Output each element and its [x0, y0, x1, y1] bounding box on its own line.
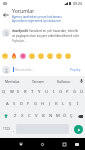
button[interactable]: Q — [0, 86, 8, 98]
button[interactable]: Switch keyboard — [71, 138, 83, 150]
button[interactable]: ?123 — [2, 124, 11, 134]
staticText: P — [66, 89, 69, 95]
button[interactable]: Reaction — [2, 53, 8, 59]
staticText: K — [55, 101, 58, 107]
button[interactable]: A — [4, 98, 11, 110]
button[interactable]: Back — [0, 7, 12, 23]
button[interactable]: Reaction — [11, 53, 17, 59]
button[interactable]: Merhaba — [0, 76, 25, 86]
staticText: V — [35, 113, 38, 119]
button[interactable]: Ç — [68, 110, 75, 122]
button[interactable]: F — [25, 98, 32, 110]
button[interactable]: H — [39, 98, 46, 110]
button[interactable]: Backspace — [75, 110, 85, 122]
button[interactable]: P — [64, 86, 71, 98]
button[interactable]: Ö — [61, 110, 68, 122]
button[interactable]: Tamam — [25, 76, 51, 86]
staticText: N — [49, 113, 53, 119]
button[interactable]: K — [53, 98, 60, 110]
staticText: I — [53, 89, 55, 95]
button[interactable]: Reaction — [29, 53, 35, 59]
staticText: Kullanıcı — [57, 79, 71, 84]
button[interactable]: X — [19, 110, 26, 122]
staticText: Ç — [70, 113, 73, 119]
button[interactable]: B — [40, 110, 47, 122]
staticText: F — [27, 101, 30, 107]
staticText: Y — [38, 89, 41, 95]
button[interactable]: Reaction — [56, 53, 62, 59]
button[interactable]: Back — [15, 138, 27, 150]
button[interactable]: Z — [11, 110, 19, 122]
staticText: davidjanlik Sanalsed en çok hazardan, et… — [12, 29, 82, 37]
staticText: W — [10, 89, 14, 95]
button[interactable]: Reaction — [65, 53, 71, 59]
staticText: Ş — [69, 101, 72, 107]
staticText: Tamam — [32, 79, 44, 84]
button[interactable]: T — [29, 86, 36, 98]
staticText: A — [6, 101, 9, 107]
staticText: Ü — [80, 89, 84, 95]
button[interactable]: D — [18, 98, 25, 110]
staticText: R — [24, 89, 27, 95]
button[interactable]: L — [60, 98, 67, 110]
staticText: O — [59, 89, 63, 95]
staticText: Ö — [63, 113, 67, 119]
button[interactable]: Y — [36, 86, 43, 98]
button[interactable]: Reaction — [20, 53, 26, 59]
staticText: J — [49, 101, 51, 107]
staticText: M — [56, 113, 60, 119]
staticText: X — [21, 113, 24, 119]
staticText: L — [62, 101, 65, 107]
button[interactable]: Voice input — [77, 76, 85, 86]
button[interactable]: Paylaş — [68, 65, 83, 74]
staticText: S — [13, 101, 16, 107]
button[interactable]: R — [22, 86, 29, 98]
button[interactable]: I — [50, 86, 57, 98]
staticText: T — [31, 89, 34, 95]
button[interactable]: E — [15, 86, 22, 98]
staticText: E — [17, 89, 20, 95]
button[interactable]: Ü — [78, 86, 85, 98]
staticText: . — [71, 127, 72, 132]
button[interactable]: Period — [69, 124, 74, 134]
button[interactable]: G — [32, 98, 39, 110]
staticText: ?123 — [3, 127, 10, 131]
staticText: İ — [77, 101, 79, 107]
staticText: Ayrıntılarını öğrenmek için dokunun — [12, 19, 61, 23]
button[interactable]: Home — [36, 138, 48, 150]
button[interactable]: Reaction — [47, 53, 53, 59]
staticText: Yorumlar — [12, 7, 35, 14]
button[interactable]: U — [43, 86, 50, 98]
button[interactable]: Kullanıcı — [51, 76, 77, 86]
button[interactable]: O — [57, 86, 64, 98]
button[interactable]: Reaction — [38, 53, 44, 59]
button[interactable]: W — [8, 86, 15, 98]
staticText: Ğ — [73, 89, 77, 95]
button[interactable]: S — [11, 98, 18, 110]
button[interactable]: Comma — [11, 124, 16, 134]
staticText: Merhaba — [5, 79, 20, 84]
staticText: Z — [14, 113, 17, 119]
button[interactable]: Recents — [58, 138, 70, 150]
staticText: Yorum ekle... — [15, 68, 68, 72]
button[interactable]: Shift — [0, 110, 11, 122]
button[interactable]: Ğ — [71, 86, 78, 98]
button[interactable]: C — [26, 110, 33, 122]
button[interactable]: M — [54, 110, 61, 122]
staticText: Q — [2, 89, 6, 95]
button[interactable]: V — [33, 110, 40, 122]
button[interactable]: İ — [74, 98, 81, 110]
staticText: C — [28, 113, 31, 119]
button[interactable]: N — [47, 110, 54, 122]
button[interactable]: J — [46, 98, 53, 110]
staticText: B — [42, 113, 45, 119]
staticText: Agency tarafından yorum kısıtlaması — [12, 15, 62, 19]
staticText: , — [13, 127, 14, 132]
staticText: Paylaş — [70, 67, 81, 72]
button[interactable]: Ş — [67, 98, 74, 110]
staticText: U — [45, 89, 49, 95]
staticText: H — [41, 101, 45, 107]
staticText: Paylaşılan... — [12, 39, 27, 43]
button[interactable]: Send — [74, 125, 83, 134]
